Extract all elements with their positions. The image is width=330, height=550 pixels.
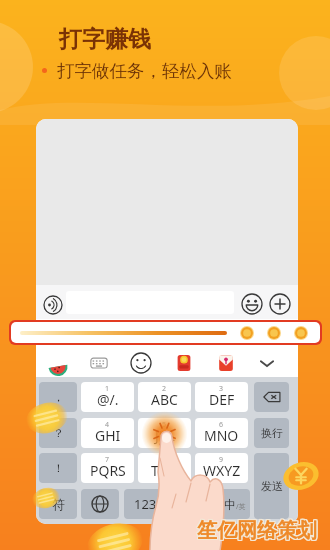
button[interactable]: Language (81, 489, 119, 519)
staticText: ， (53, 390, 64, 404)
button[interactable] (172, 489, 214, 519)
button[interactable]: 2 (138, 382, 191, 412)
staticText: ？ (53, 426, 64, 440)
button[interactable]: 7 (81, 453, 134, 483)
staticText: 笙亿网络策划 (196, 518, 316, 543)
button[interactable]: Red packet (173, 352, 195, 374)
staticText: 笙亿网络策划 (198, 518, 318, 543)
button[interactable]: Emoticon (130, 352, 152, 374)
staticText: 打字赚钱 (59, 25, 151, 54)
staticText: 打字做任务，轻松入账 (57, 60, 232, 82)
button[interactable]: 9 (195, 453, 248, 483)
button[interactable]: 中 (219, 489, 250, 519)
button[interactable]: Keyboard (88, 352, 110, 374)
button[interactable]: Collapse (256, 352, 278, 374)
staticText: GHI (95, 426, 121, 445)
staticText: 笙亿网络策划 (198, 517, 318, 542)
staticText: /英 (236, 502, 246, 512)
staticText: 笙亿网络策划 (197, 518, 317, 543)
button[interactable]: 1 (81, 382, 134, 412)
button[interactable]: 5 (138, 418, 191, 448)
staticText: 1 (105, 384, 110, 394)
staticText: 笙亿网络策划 (197, 517, 317, 542)
staticText: 笙亿网络策划 (197, 519, 317, 544)
staticText: 3 (219, 384, 224, 394)
staticText: DEF (209, 390, 235, 409)
button[interactable]: Delete (254, 382, 289, 412)
staticText: 9 (219, 455, 224, 465)
staticText: ！ (53, 461, 64, 475)
staticText: @/. (97, 390, 119, 409)
button[interactable]: 3 (195, 382, 248, 412)
button[interactable]: Emoji (241, 293, 263, 315)
staticText: 发送 (261, 479, 283, 493)
staticText: 笙亿网络策划 (198, 519, 318, 544)
staticText: TUV (151, 461, 178, 480)
button[interactable]: Add (269, 293, 291, 315)
staticText: 6 (219, 420, 224, 430)
button[interactable]: 8 (138, 453, 191, 483)
button[interactable]: Voice input (43, 295, 63, 315)
staticText: 4 (105, 420, 110, 430)
staticText: MNO (204, 426, 239, 445)
staticText: 笙亿网络策划 (196, 519, 316, 544)
staticText: ABC (151, 390, 178, 409)
button[interactable]: 换行 (254, 418, 289, 448)
button[interactable]: ， (39, 382, 77, 412)
button[interactable]: Gift (215, 352, 237, 374)
button[interactable]: ？ (39, 418, 77, 448)
staticText: 7 (105, 455, 110, 465)
button[interactable]: 发送 (254, 453, 289, 519)
staticText: WXYZ (203, 461, 241, 480)
button[interactable]: 符 (39, 489, 77, 519)
button[interactable]: 4 (81, 418, 134, 448)
button[interactable]: 6 (195, 418, 248, 448)
staticText: PQRS (90, 461, 126, 480)
staticText: 2 (162, 384, 167, 394)
staticText: 笙亿网络策划 (196, 517, 316, 542)
staticText: 符 (52, 496, 65, 512)
button[interactable]: 123 (124, 489, 167, 519)
button[interactable]: ！ (39, 453, 77, 483)
staticText: 123 (134, 495, 157, 513)
button[interactable]: Stickers (46, 352, 68, 374)
staticText: 5 (162, 420, 167, 430)
staticText: 中 (224, 497, 236, 512)
staticText: JKL (155, 426, 175, 445)
staticText: 换行 (261, 426, 283, 440)
